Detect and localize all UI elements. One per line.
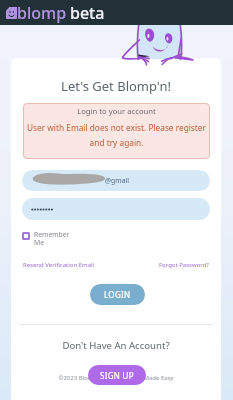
staticText: Remember Me — [34, 230, 70, 247]
staticText: blomp — [17, 2, 67, 24]
button[interactable]: Remember Me — [22, 230, 70, 247]
staticText: User with Email does not exist. Please r… — [23, 122, 210, 148]
button[interactable]: @gmail — [22, 170, 210, 191]
button[interactable]: Forgot Password? — [159, 261, 209, 269]
staticText: Login to your account — [23, 106, 210, 116]
button[interactable]: Resend Verification Email — [23, 261, 95, 269]
staticText: @gmail — [105, 176, 129, 185]
staticText: SIGN UP — [100, 370, 134, 381]
button[interactable] — [22, 198, 210, 220]
button[interactable]: SIGN UP — [88, 365, 146, 385]
staticText: LOGIN — [104, 289, 131, 300]
staticText: Don't Have An Account? — [11, 339, 221, 352]
staticText: beta — [70, 2, 105, 24]
button[interactable]: LOGIN — [90, 284, 145, 305]
staticText: Let's Get Blomp'n! — [11, 77, 221, 95]
staticText: ©2023 Blomp - Cloud Storage Made Easy — [11, 374, 221, 382]
